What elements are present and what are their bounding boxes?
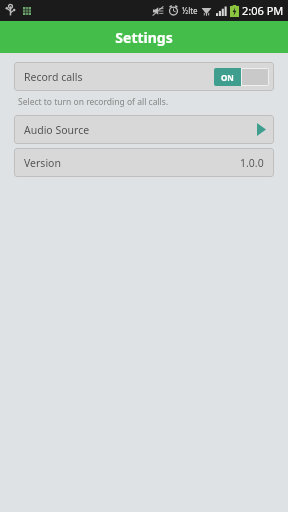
staticText: Select to turn on recording of all calls… — [18, 96, 169, 108]
button[interactable]: Audio Source — [14, 115, 274, 144]
staticText: 2:06 PM — [242, 3, 284, 18]
button[interactable]: Record calls toggle, on — [214, 68, 269, 86]
staticText: ON — [221, 72, 234, 83]
button[interactable]: Record calls — [14, 62, 274, 91]
staticText: 1.0.0 — [240, 156, 264, 170]
staticText: Audio Source — [24, 123, 90, 137]
staticText: Version — [24, 156, 61, 170]
staticText: Settings — [115, 28, 173, 47]
staticText: Record calls — [24, 70, 83, 84]
staticText: ½lte — [182, 5, 198, 16]
button[interactable]: Version — [14, 148, 274, 177]
other: Open audio source — [257, 123, 266, 136]
